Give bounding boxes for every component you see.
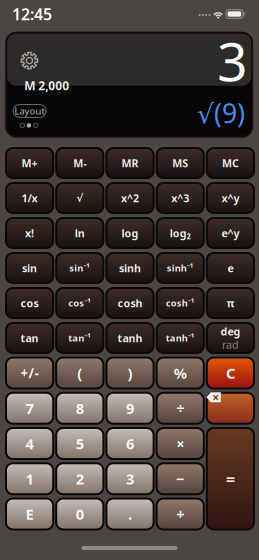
button[interactable]: cos: [5, 287, 54, 319]
staticText: 9: [126, 398, 134, 418]
staticText: log: [121, 226, 138, 240]
button[interactable]: MR: [105, 147, 155, 179]
button[interactable]: sin: [5, 252, 54, 284]
button[interactable]: +/-: [5, 356, 54, 389]
staticText: 12:45: [12, 3, 52, 25]
staticText: −: [176, 469, 185, 488]
button[interactable]: E: [5, 497, 54, 530]
button[interactable]: tan: [5, 322, 54, 354]
button[interactable]: sin⁻¹: [55, 252, 104, 284]
button[interactable]: 3: [105, 462, 155, 495]
staticText: π: [226, 296, 234, 310]
button[interactable]: ): [105, 356, 155, 389]
staticText: (: [77, 363, 82, 383]
staticText: cos: [21, 296, 39, 310]
button[interactable]: x!: [5, 217, 54, 249]
staticText: sinh⁻¹: [167, 262, 194, 274]
staticText: tanh⁻¹: [166, 332, 195, 344]
button[interactable]: sinh: [105, 252, 155, 284]
button[interactable]: x^2: [105, 182, 155, 214]
staticText: 1: [26, 469, 34, 488]
staticText: 3: [126, 469, 134, 488]
staticText: rad: [222, 337, 239, 352]
staticText: E: [26, 504, 34, 524]
staticText: Layout: [15, 105, 45, 117]
button[interactable]: cosh: [105, 287, 155, 319]
button[interactable]: π: [206, 287, 255, 319]
button[interactable]: M-: [55, 147, 104, 179]
staticText: log₂: [170, 226, 191, 240]
button[interactable]: sinh⁻¹: [156, 252, 205, 284]
button[interactable]: 7: [5, 392, 54, 425]
button[interactable]: √: [55, 182, 104, 214]
button[interactable]: cosh⁻¹: [156, 287, 205, 319]
staticText: tan⁻¹: [68, 332, 91, 344]
staticText: 5: [76, 434, 84, 453]
button[interactable]: tan⁻¹: [55, 322, 104, 354]
staticText: MS: [172, 156, 188, 170]
button[interactable]: x^3: [156, 182, 205, 214]
staticText: x^y: [221, 191, 239, 205]
staticText: sin⁻¹: [69, 262, 90, 274]
button[interactable]: MC: [206, 147, 255, 179]
staticText: 0: [76, 504, 84, 524]
staticText: 8: [76, 398, 84, 418]
button[interactable]: %: [156, 356, 205, 389]
button[interactable]: e^y: [206, 217, 255, 249]
button[interactable]: MS: [156, 147, 205, 179]
button[interactable]: C: [206, 356, 255, 389]
button[interactable]: tanh: [105, 322, 155, 354]
button[interactable]: [206, 322, 255, 354]
button[interactable]: 1/x: [5, 182, 54, 214]
button[interactable]: M+: [5, 147, 54, 179]
button[interactable]: Settings: [20, 52, 38, 70]
button[interactable]: log₂: [156, 217, 205, 249]
button[interactable]: cos⁻¹: [55, 287, 104, 319]
button[interactable]: +: [156, 497, 205, 530]
staticText: ×: [212, 389, 219, 405]
button[interactable]: (: [55, 356, 104, 389]
button[interactable]: e: [206, 252, 255, 284]
button[interactable]: deg: [206, 322, 255, 354]
staticText: e: [227, 261, 233, 275]
button[interactable]: 4: [5, 427, 54, 460]
staticText: ×: [176, 434, 184, 453]
staticText: 6: [126, 434, 134, 453]
button[interactable]: ÷: [156, 392, 205, 425]
button[interactable]: 6: [105, 427, 155, 460]
staticText: sin: [22, 261, 37, 275]
staticText: M-: [73, 156, 86, 170]
staticText: M 2,000: [24, 77, 69, 93]
staticText: cos⁻¹: [68, 297, 91, 309]
staticText: MR: [121, 156, 138, 170]
staticText: ): [127, 363, 132, 383]
button[interactable]: ln: [55, 217, 104, 249]
staticText: sinh: [119, 261, 141, 275]
staticText: MC: [222, 156, 239, 170]
button[interactable]: =: [206, 427, 255, 530]
button[interactable]: x^y: [206, 182, 255, 214]
button[interactable]: 8: [55, 392, 104, 425]
staticText: C: [226, 363, 235, 383]
button[interactable]: ×: [156, 427, 205, 460]
staticText: cosh⁻¹: [166, 297, 195, 309]
staticText: 3: [217, 25, 248, 96]
button[interactable]: 2: [55, 462, 104, 495]
button[interactable]: Delete: [206, 392, 255, 425]
button[interactable]: 0: [55, 497, 104, 530]
staticText: tanh: [117, 331, 142, 345]
button[interactable]: tanh⁻¹: [156, 322, 205, 354]
button[interactable]: log: [105, 217, 155, 249]
staticText: x^2: [121, 191, 139, 205]
button[interactable]: −: [156, 462, 205, 495]
staticText: √(9): [197, 95, 245, 131]
staticText: +/-: [21, 364, 39, 382]
button[interactable]: Layout: [13, 104, 46, 117]
button[interactable]: 5: [55, 427, 104, 460]
button[interactable]: 9: [105, 392, 155, 425]
staticText: ÷: [176, 398, 184, 418]
button[interactable]: .: [105, 497, 155, 530]
staticText: 2: [76, 469, 84, 488]
staticText: cosh: [117, 296, 142, 310]
button[interactable]: 1: [5, 462, 54, 495]
